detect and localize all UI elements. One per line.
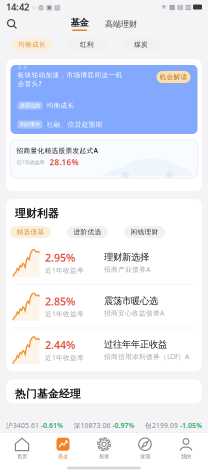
staticText: 投资 bbox=[99, 453, 109, 460]
staticText: 2.95% bbox=[45, 251, 75, 265]
button[interactable]: 2.95% bbox=[6, 241, 202, 284]
staticText: 招商产业债券A bbox=[104, 265, 150, 274]
button[interactable]: 基金 bbox=[43, 434, 83, 462]
button[interactable]: 煤炭 bbox=[122, 38, 160, 50]
button[interactable]: 2.44% bbox=[6, 328, 202, 371]
staticText: 板块轮动加速，市场博弈间这一机会冒头? bbox=[17, 71, 122, 88]
staticText: 近1年收益率 bbox=[45, 309, 84, 318]
staticText: 机会解读 bbox=[159, 73, 187, 81]
staticText: 震荡市暖心选 bbox=[104, 295, 158, 306]
staticText: 近1年收益率 bbox=[45, 353, 84, 362]
staticText: 基金 bbox=[58, 453, 68, 460]
staticText: 推荐品类 bbox=[20, 102, 40, 109]
staticText: “ bbox=[17, 57, 27, 87]
button[interactable]: 投资 bbox=[84, 434, 124, 462]
button[interactable]: 闲钱理财 bbox=[124, 226, 165, 238]
staticText: 煤炭 bbox=[134, 40, 148, 49]
staticText: 14:42 bbox=[6, 1, 29, 13]
staticText: 精选债基 bbox=[16, 228, 44, 236]
button[interactable]: 基金 bbox=[62, 15, 97, 33]
button[interactable]: 高端理财 bbox=[101, 15, 141, 33]
staticText: 深10873.06 bbox=[73, 421, 110, 430]
staticText: 闲钱理财 bbox=[130, 228, 158, 236]
staticText: 高端理财 bbox=[105, 19, 137, 29]
staticText: 2.85% bbox=[45, 294, 75, 308]
staticText: ✳ ▦ ▤ ▥ bbox=[161, 3, 191, 11]
staticText: 进阶优选 bbox=[73, 228, 101, 236]
staticText: 理财利器 bbox=[15, 207, 59, 220]
button[interactable]: Search bbox=[0, 15, 24, 33]
staticText: 均衡成长 bbox=[18, 40, 46, 49]
button[interactable]: 进阶优选 bbox=[67, 226, 108, 238]
staticText: 基金 bbox=[70, 17, 88, 28]
staticText: 创2199.09 bbox=[145, 421, 178, 430]
staticText: 发现 bbox=[140, 453, 150, 460]
button[interactable]: 红利 bbox=[68, 38, 106, 50]
staticText: 利好事件 bbox=[20, 121, 40, 128]
button[interactable]: 均衡成长 bbox=[12, 38, 52, 50]
staticText: 红利 bbox=[80, 40, 94, 49]
button[interactable]: 招商量化精选股票发起式A bbox=[10, 140, 197, 178]
staticText: -0.97% bbox=[112, 421, 134, 430]
button[interactable]: 我的 bbox=[166, 434, 206, 462]
staticText: 均衡成长 bbox=[46, 101, 74, 110]
staticText: 理财新选择 bbox=[104, 251, 149, 263]
staticText: 招商量化精选股票发起式A bbox=[16, 146, 97, 155]
button[interactable]: 精选债基 bbox=[10, 226, 51, 238]
staticText: 我的 bbox=[181, 453, 191, 460]
staticText: 近1年收益率 bbox=[45, 266, 84, 275]
staticText: 社融、信贷超预期 bbox=[46, 120, 102, 129]
staticText: 28.16% bbox=[49, 157, 78, 167]
button[interactable]: 首页 bbox=[2, 434, 42, 462]
staticText: ◌ ◍ ▣ ▤ bbox=[32, 3, 60, 11]
button[interactable]: “ bbox=[10, 65, 197, 134]
staticText: -0.61% bbox=[41, 421, 63, 430]
staticText: -1.05% bbox=[180, 421, 202, 430]
staticText: 首页 bbox=[17, 453, 27, 460]
staticText: 2.44% bbox=[45, 338, 75, 352]
button[interactable]: 发现 bbox=[125, 434, 165, 462]
staticText: 近1年收益率 bbox=[16, 159, 44, 166]
staticText: 过往年年正收益 bbox=[104, 339, 167, 350]
staticText: 招商信用添利债券（LOF）A bbox=[104, 352, 189, 361]
button[interactable]: 2.85% bbox=[6, 285, 202, 328]
staticText: 招商安心收益债券A bbox=[104, 308, 164, 317]
staticText: 沪3405.61 bbox=[6, 421, 39, 430]
staticText: 热门基金经理 bbox=[15, 387, 81, 400]
